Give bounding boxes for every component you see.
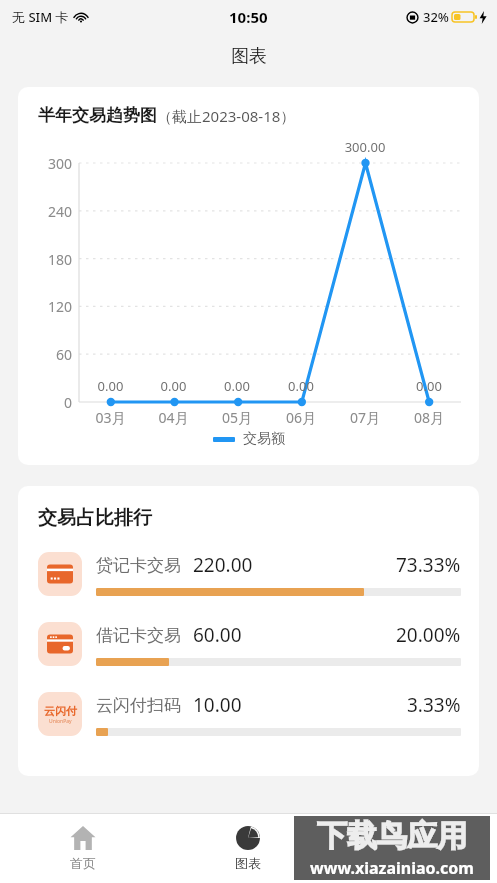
staticText: 无 SIM 卡 bbox=[12, 8, 69, 26]
staticText: 首页 bbox=[70, 855, 96, 871]
staticText: 06月 bbox=[269, 408, 333, 427]
staticText: 10.00 bbox=[193, 692, 242, 718]
button[interactable]: 云闪付 bbox=[18, 692, 479, 736]
staticText: 贷记卡交易 bbox=[96, 555, 181, 576]
staticText: 借记卡交易 bbox=[96, 625, 181, 646]
staticText: 05月 bbox=[205, 408, 269, 427]
staticText: 240 bbox=[18, 202, 72, 221]
staticText: 0 bbox=[18, 393, 72, 412]
staticText: 图表 bbox=[235, 855, 261, 871]
other: Home bbox=[70, 825, 96, 851]
other: Charts bbox=[235, 825, 261, 851]
staticText: 10:50 bbox=[229, 7, 268, 27]
staticText: 下载鸟应用 bbox=[317, 817, 467, 855]
staticText: 07月 bbox=[333, 408, 397, 427]
staticText: 图表 bbox=[231, 45, 267, 68]
staticText: 60.00 bbox=[193, 622, 242, 648]
staticText: 0.00 bbox=[269, 377, 333, 395]
staticText: 云闪付 bbox=[44, 704, 77, 718]
staticText: UnionPay bbox=[49, 718, 72, 725]
staticText: 32% bbox=[423, 8, 449, 26]
button[interactable]: 贷记卡交易 bbox=[18, 552, 479, 596]
staticText: 交易占比排行 bbox=[38, 506, 152, 530]
button[interactable]: Home bbox=[0, 814, 165, 883]
staticText: 300 bbox=[18, 154, 72, 173]
button[interactable]: 借记卡交易 bbox=[18, 622, 479, 666]
staticText: 60 bbox=[18, 345, 72, 364]
staticText: 半年交易趋势图 bbox=[38, 105, 157, 126]
button[interactable]: Charts bbox=[165, 814, 331, 883]
staticText: 120 bbox=[18, 297, 72, 316]
staticText: 300.00 bbox=[333, 138, 397, 156]
staticText: 220.00 bbox=[193, 552, 253, 578]
staticText: 20.00% bbox=[396, 622, 461, 648]
staticText: 08月 bbox=[397, 408, 461, 427]
staticText: 0.00 bbox=[205, 377, 269, 395]
staticText: 云闪付扫码 bbox=[96, 695, 181, 716]
staticText: 0.00 bbox=[142, 377, 205, 395]
staticText: 04月 bbox=[142, 408, 205, 427]
staticText: 03月 bbox=[79, 408, 142, 427]
staticText: 180 bbox=[18, 250, 72, 269]
staticText: www.xiazainiao.com bbox=[310, 857, 474, 879]
staticText: 3.33% bbox=[407, 692, 461, 718]
staticText: （截止2023-08-18） bbox=[157, 106, 296, 126]
staticText: 73.33% bbox=[396, 552, 461, 578]
staticText: 0.00 bbox=[397, 377, 461, 395]
staticText: 交易额 bbox=[243, 430, 285, 448]
staticText: 0.00 bbox=[79, 377, 142, 395]
